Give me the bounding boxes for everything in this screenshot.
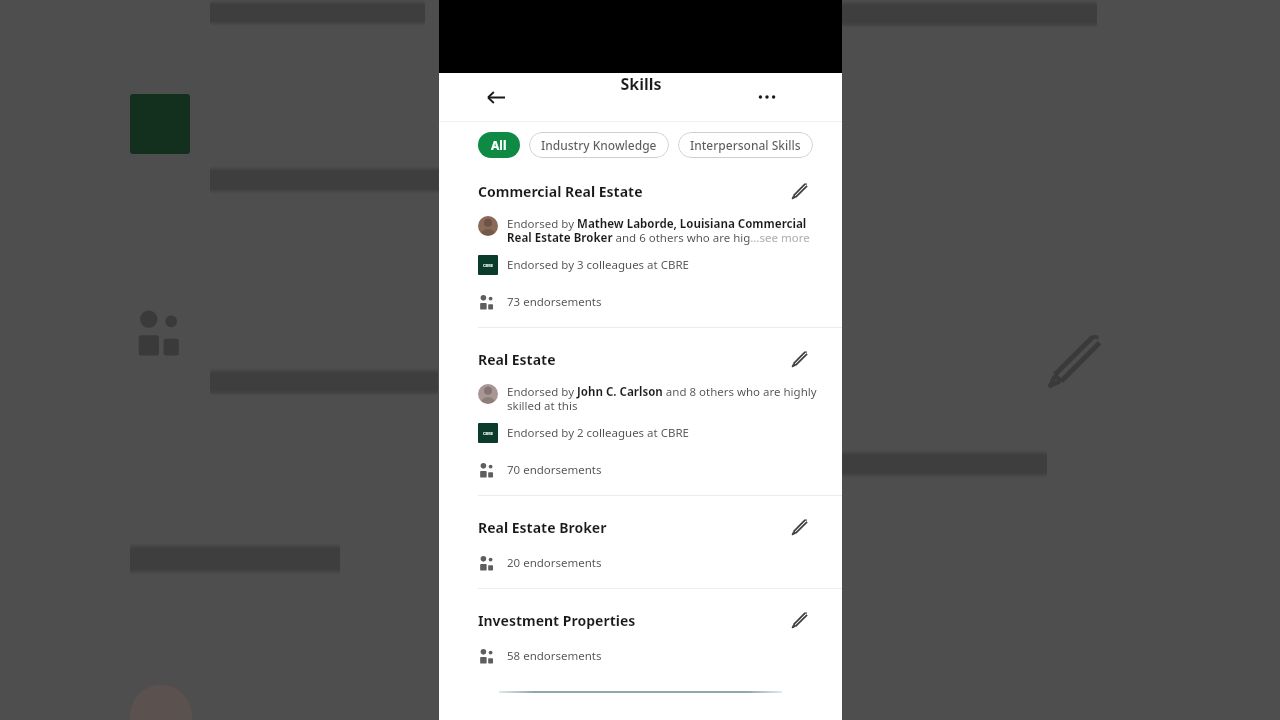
button[interactable]: Edit Investment Properties xyxy=(784,605,814,635)
staticText: Endorsed by John C. Carlson and 8 others… xyxy=(507,384,824,413)
button[interactable]: Edit Real Estate xyxy=(784,344,814,374)
button[interactable]: Back xyxy=(479,80,513,114)
staticText: Endorsed by 3 colleagues at CBRE xyxy=(507,257,689,273)
button[interactable]: Investment Properties xyxy=(439,589,842,681)
staticText: Real Estate xyxy=(478,350,784,369)
staticText: Interpersonal Skills xyxy=(690,137,801,153)
staticText: Skills xyxy=(620,73,662,95)
staticText: 73 endorsements xyxy=(507,294,602,310)
button[interactable]: Industry Knowledge xyxy=(529,132,669,158)
button[interactable]: Real Estate Broker xyxy=(439,496,842,588)
staticText: 20 endorsements xyxy=(507,555,602,571)
button[interactable]: Real Estate xyxy=(439,328,842,495)
staticText: All xyxy=(491,137,507,153)
staticText: 70 endorsements xyxy=(507,462,602,478)
button[interactable]: More options xyxy=(750,80,784,114)
button[interactable]: Edit Commercial Real Estate xyxy=(784,176,814,206)
button[interactable]: Interpersonal Skills xyxy=(678,132,813,158)
staticText: CBRE xyxy=(483,263,494,268)
button[interactable]: All xyxy=(478,132,520,158)
staticText: CBRE xyxy=(483,431,494,436)
staticText: Endorsed by 2 colleagues at CBRE xyxy=(507,425,689,441)
staticText: 58 endorsements xyxy=(507,648,602,664)
staticText: Investment Properties xyxy=(478,611,784,630)
button[interactable]: Commercial Real Estate xyxy=(439,162,842,327)
staticText: Endorsed by Mathew Laborde, Louisiana Co… xyxy=(507,216,824,245)
staticText: Industry Knowledge xyxy=(541,137,657,153)
staticText: Real Estate Broker xyxy=(478,518,784,537)
button[interactable]: Edit Real Estate Broker xyxy=(784,512,814,542)
staticText: Commercial Real Estate xyxy=(478,182,784,201)
